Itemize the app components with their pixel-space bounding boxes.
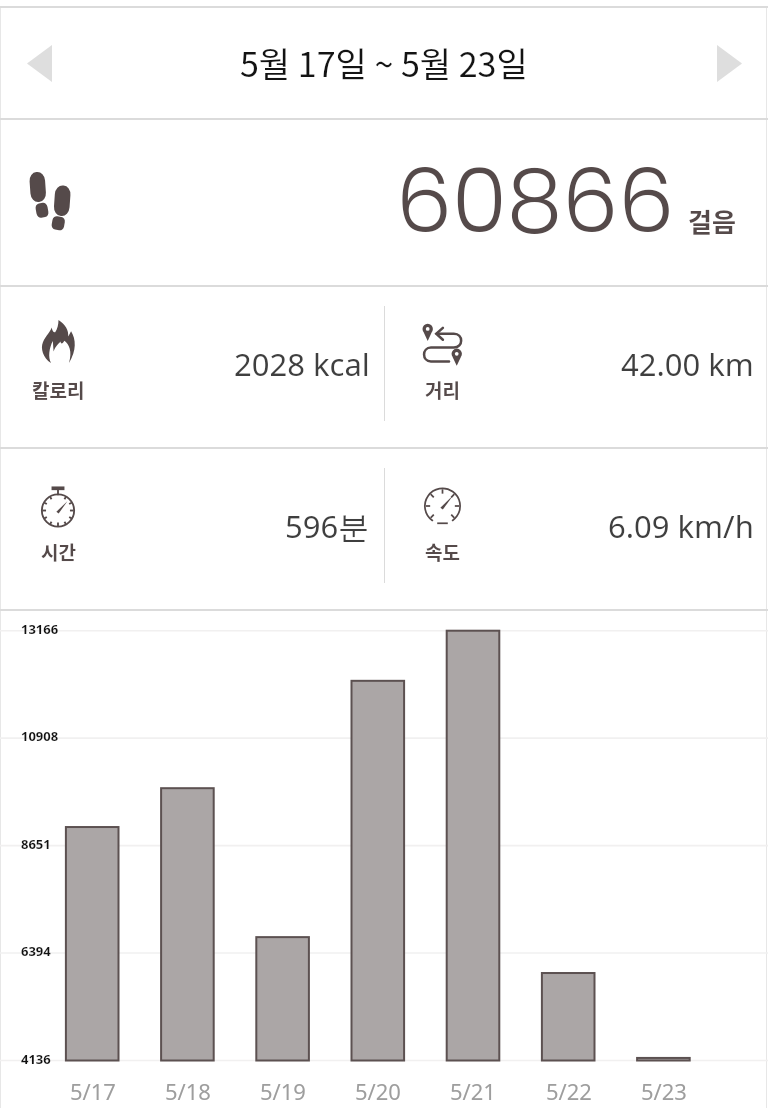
button[interactable]: 속도 <box>384 449 768 609</box>
staticText: 5/17 <box>70 1076 116 1106</box>
staticText: 5/23 <box>641 1076 687 1106</box>
staticText: 5월 17일 ~ 5월 23일 <box>240 38 528 87</box>
button[interactable]: 다음 주 <box>704 38 754 88</box>
staticText: 걸음 <box>688 202 736 240</box>
staticText: 596분 <box>285 505 370 547</box>
staticText: 10908 <box>21 727 59 745</box>
staticText: 5/22 <box>546 1076 592 1106</box>
staticText: 60866 <box>396 139 675 264</box>
staticText: 6.09 km/h <box>608 505 754 547</box>
staticText: 42.00 km <box>621 343 754 385</box>
staticText: 시간 <box>41 538 76 566</box>
staticText: 4136 <box>21 1050 51 1068</box>
button[interactable]: 이전 주 <box>14 38 64 88</box>
staticText: 속도 <box>425 538 460 566</box>
staticText: 5/20 <box>355 1076 401 1106</box>
staticText: 8651 <box>21 835 51 853</box>
button[interactable]: 60866 <box>0 120 768 285</box>
button[interactable]: 거리 <box>384 287 768 447</box>
staticText: 6394 <box>21 942 51 960</box>
staticText: 5/19 <box>260 1076 306 1106</box>
staticText: 13166 <box>21 620 59 638</box>
staticText: 칼로리 <box>32 376 85 404</box>
staticText: 5/21 <box>450 1076 496 1106</box>
staticText: 거리 <box>425 376 460 404</box>
staticText: 5/18 <box>165 1076 211 1106</box>
button[interactable]: 시간 <box>0 449 384 609</box>
staticText: 2028 kcal <box>234 343 370 385</box>
button[interactable]: 칼로리 <box>0 287 384 447</box>
